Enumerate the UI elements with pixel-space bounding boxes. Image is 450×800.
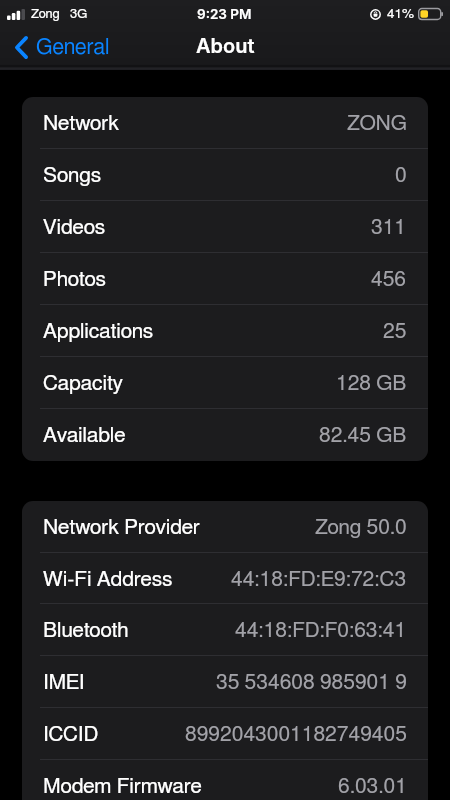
staticText: IMEI xyxy=(43,672,85,693)
staticText: Capacity xyxy=(43,373,123,394)
button[interactable]: Capacity xyxy=(22,357,428,409)
staticText: Network xyxy=(43,113,119,134)
staticText: 82.45 GB xyxy=(319,425,407,446)
button[interactable]: Photos xyxy=(22,253,428,305)
staticText: 35 534608 985901 9 xyxy=(216,672,407,693)
button[interactable]: Modem Firmware xyxy=(22,760,428,800)
staticText: Applications xyxy=(43,321,154,342)
other: Cellular signal strength xyxy=(7,9,25,20)
staticText: ZONG xyxy=(347,113,407,134)
staticText: Wi-Fi Address xyxy=(43,569,173,590)
staticText: 6.03.01 xyxy=(338,776,407,797)
button[interactable]: Applications xyxy=(22,305,428,357)
staticText: 311 xyxy=(371,217,407,238)
staticText: Videos xyxy=(43,217,106,238)
staticText: 128 GB xyxy=(336,373,407,394)
button[interactable]: ICCID xyxy=(22,708,428,760)
staticText: 25 xyxy=(383,321,407,342)
staticText: Available xyxy=(43,425,126,446)
button[interactable]: Network Provider xyxy=(22,501,428,553)
staticText: About xyxy=(196,34,255,58)
button[interactable]: IMEI xyxy=(22,656,428,708)
staticText: 44:18:FD:F0:63:41 xyxy=(235,620,407,641)
staticText: 9:23 PM xyxy=(197,6,252,22)
staticText: Zong xyxy=(31,8,60,21)
staticText: 0 xyxy=(395,165,407,186)
other: Rotation lock xyxy=(370,9,381,20)
button[interactable]: General xyxy=(0,33,122,62)
button[interactable]: Bluetooth xyxy=(22,604,428,656)
staticText: Modem Firmware xyxy=(43,776,202,797)
other: Battery 41 percent xyxy=(418,8,443,20)
button[interactable]: Available xyxy=(22,409,428,461)
button[interactable]: Wi-Fi Address xyxy=(22,553,428,605)
staticText: Songs xyxy=(43,165,101,186)
staticText: 44:18:FD:E9:72:C3 xyxy=(231,569,407,590)
staticText: General xyxy=(36,37,110,59)
staticText: Bluetooth xyxy=(43,620,129,641)
staticText: Network Provider xyxy=(43,517,200,538)
button[interactable]: Videos xyxy=(22,201,428,253)
staticText: 8992043001182749405 xyxy=(185,724,407,745)
staticText: ICCID xyxy=(43,724,99,745)
staticText: 3G xyxy=(70,8,88,21)
staticText: 456 xyxy=(371,269,407,290)
button[interactable]: Network xyxy=(22,97,428,149)
staticText: Zong 50.0 xyxy=(315,517,407,538)
staticText: Photos xyxy=(43,269,106,290)
staticText: 41% xyxy=(387,7,415,21)
button[interactable]: Songs xyxy=(22,149,428,201)
